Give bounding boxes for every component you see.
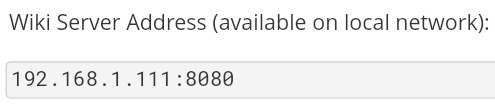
staticText: Wiki Server Address (available on local …: [9, 7, 490, 36]
staticText: 192.168.1.111:8080: [11, 64, 235, 91]
button[interactable]: Wiki server address 192.168.1.111:8080, …: [5, 61, 495, 99]
